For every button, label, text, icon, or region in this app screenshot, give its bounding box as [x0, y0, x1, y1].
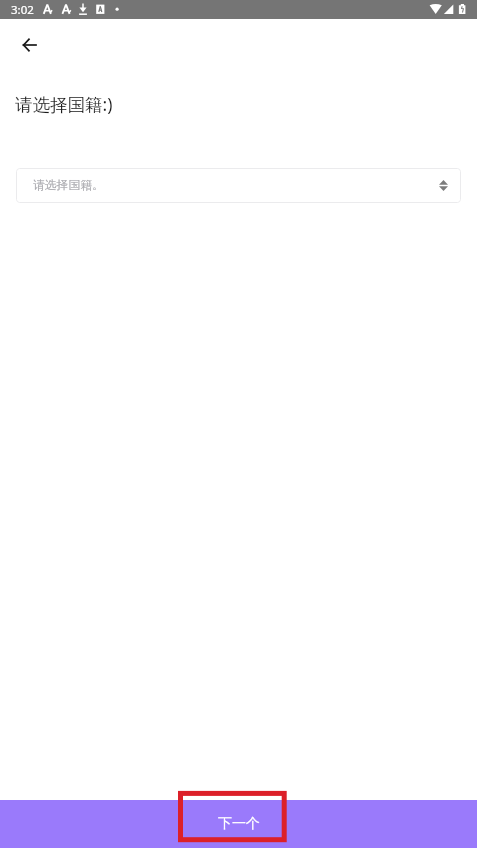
button[interactable]: 下一个 — [0, 800, 477, 848]
staticText: 下一个 — [218, 815, 260, 833]
button[interactable]: 请选择国籍。 — [16, 168, 461, 203]
button[interactable]: Back — [9, 25, 49, 65]
staticText: 请选择国籍:) — [15, 92, 113, 116]
staticText: 请选择国籍。 — [33, 178, 104, 193]
staticText: 3:02 — [11, 2, 34, 18]
other: Open list — [439, 180, 448, 191]
